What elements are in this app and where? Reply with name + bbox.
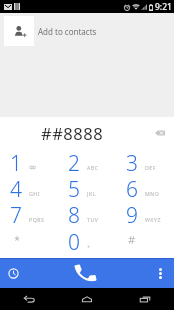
button[interactable]: Add to contacts [0, 16, 174, 46]
button[interactable]: # [116, 228, 174, 255]
staticText: 7 [10, 201, 22, 228]
button[interactable]: 0 [58, 228, 116, 255]
button[interactable]: * [0, 228, 58, 255]
staticText: 6 [126, 175, 138, 201]
staticText: 9:21 [155, 1, 172, 13]
staticText: 1 [10, 149, 22, 175]
staticText: 4 [10, 175, 22, 201]
button[interactable]: More options [146, 258, 174, 288]
button[interactable]: 4 [0, 175, 58, 201]
staticText: 5 [68, 175, 80, 201]
staticText: ABC [87, 164, 99, 171]
staticText: ##8888 [41, 122, 104, 144]
button[interactable]: 6 [116, 175, 174, 201]
button[interactable]: Backspace [145, 117, 174, 146]
staticText: WXYZ [145, 216, 161, 223]
staticText: * [14, 232, 21, 247]
button[interactable]: Recents [116, 288, 174, 310]
button[interactable]: Call [65, 258, 105, 288]
staticText: TUV [87, 216, 99, 223]
button[interactable]: 9 [116, 201, 174, 228]
staticText: Add to contacts [38, 26, 97, 37]
button[interactable]: 7 [0, 201, 58, 228]
staticText: 3 [126, 149, 138, 175]
staticText: 8 [68, 201, 80, 228]
button[interactable]: Home [58, 288, 116, 310]
button[interactable]: 5 [58, 175, 116, 201]
staticText: # [128, 232, 136, 247]
button[interactable]: 8 [58, 201, 116, 228]
button[interactable]: 3 [116, 149, 174, 175]
button[interactable]: 1 [0, 149, 58, 175]
staticText: JKL [87, 190, 96, 197]
staticText: MNO [145, 190, 160, 197]
staticText: 0 [68, 228, 80, 255]
button[interactable]: Back [0, 288, 58, 310]
staticText: 2 [68, 149, 80, 175]
staticText: DEF [145, 164, 157, 171]
staticText: + [87, 243, 91, 250]
button[interactable]: Call history [0, 258, 27, 288]
staticText: 9 [126, 201, 138, 228]
staticText: GHI [29, 190, 41, 197]
button[interactable]: 2 [58, 149, 116, 175]
staticText: PQRS [29, 216, 45, 223]
